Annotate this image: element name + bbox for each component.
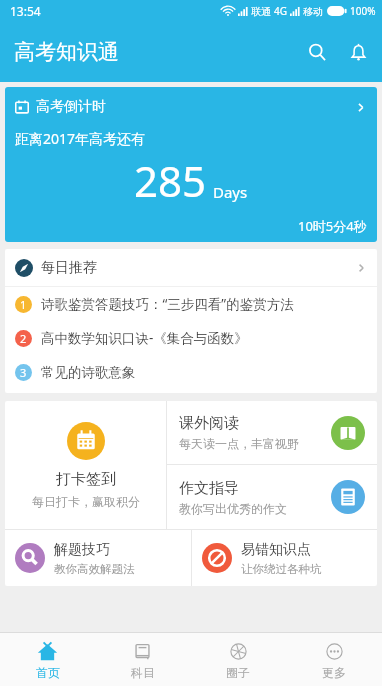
button[interactable]: 每日推荐 bbox=[5, 249, 377, 286]
button[interactable]: 打卡签到 bbox=[5, 401, 166, 529]
staticText: 教你高效解题法 bbox=[54, 562, 135, 576]
button[interactable]: 科目 bbox=[95, 633, 190, 686]
staticText: Days bbox=[213, 182, 248, 202]
button[interactable]: 首页 bbox=[0, 633, 95, 686]
staticText: 圈子 bbox=[226, 665, 250, 680]
staticText: 每日推荐 bbox=[41, 259, 97, 277]
staticText: 教你写出优秀的作文 bbox=[179, 501, 287, 516]
staticText: 10时5分4秒 bbox=[298, 217, 367, 235]
staticText: 2 bbox=[20, 331, 27, 346]
staticText: 高中数学知识口诀-《集合与函数》 bbox=[41, 329, 248, 347]
button[interactable]: 2 bbox=[5, 321, 377, 355]
staticText: 移动 bbox=[303, 5, 323, 18]
staticText: 距离2017年高考还有 bbox=[15, 129, 146, 148]
button[interactable]: 更多 bbox=[286, 633, 382, 686]
staticText: 1 bbox=[20, 297, 27, 312]
staticText: 课外阅读 bbox=[179, 414, 239, 433]
staticText: 作文指导 bbox=[179, 479, 239, 498]
button[interactable]: 易错知识点 bbox=[192, 530, 377, 586]
staticText: 高考倒计时 bbox=[36, 98, 106, 116]
staticText: 285 bbox=[134, 152, 207, 209]
button[interactable]: Search bbox=[297, 32, 337, 72]
staticText: 科目 bbox=[131, 665, 155, 680]
staticText: 首页 bbox=[36, 665, 60, 680]
button[interactable]: 作文指导 bbox=[167, 465, 377, 529]
button[interactable]: 圈子 bbox=[190, 633, 286, 686]
staticText: 3 bbox=[20, 365, 27, 380]
staticText: 打卡签到 bbox=[56, 470, 116, 489]
staticText: 13:54 bbox=[10, 3, 41, 19]
staticText: 每天读一点，丰富视野 bbox=[179, 436, 299, 451]
staticText: 让你绕过各种坑 bbox=[241, 562, 322, 576]
button[interactable]: 1 bbox=[5, 287, 377, 321]
staticText: 4G bbox=[274, 4, 287, 18]
button[interactable]: 解题技巧 bbox=[5, 530, 191, 586]
staticText: 解题技巧 bbox=[54, 541, 110, 559]
button[interactable]: 课外阅读 bbox=[167, 401, 377, 464]
staticText: 常见的诗歌意象 bbox=[41, 364, 136, 381]
button[interactable]: 高考倒计时 bbox=[5, 87, 377, 242]
staticText: 100% bbox=[350, 4, 376, 18]
button[interactable]: Notifications bbox=[338, 32, 378, 72]
button[interactable]: 3 bbox=[5, 355, 377, 389]
staticText: 联通 bbox=[251, 5, 271, 18]
staticText: 每日打卡，赢取积分 bbox=[32, 494, 140, 509]
staticText: 易错知识点 bbox=[241, 541, 311, 559]
staticText: 诗歌鉴赏答题技巧：“三步四看”的鉴赏方法 bbox=[41, 295, 294, 313]
staticText: 高考知识通 bbox=[14, 39, 119, 65]
staticText: 更多 bbox=[322, 665, 346, 680]
